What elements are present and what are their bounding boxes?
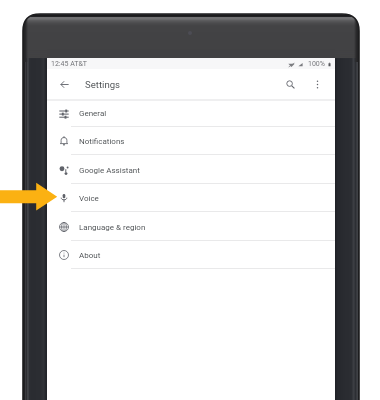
staticText: General xyxy=(79,109,107,118)
button[interactable]: Notifications xyxy=(47,127,335,155)
button[interactable]: About xyxy=(47,241,335,269)
staticText: About xyxy=(79,251,101,260)
button[interactable]: Search xyxy=(280,74,300,94)
staticText: Language & region xyxy=(79,223,146,232)
button[interactable]: Voice xyxy=(47,184,335,212)
staticText: Voice xyxy=(79,194,99,203)
staticText: 100% xyxy=(308,60,325,68)
button[interactable]: Google Assistant xyxy=(47,156,335,184)
staticText: Settings xyxy=(85,79,121,90)
button[interactable]: Language & region xyxy=(47,213,335,241)
staticText: Google Assistant xyxy=(79,166,140,175)
staticText: Notifications xyxy=(79,137,125,146)
button[interactable]: Back xyxy=(54,74,74,94)
button[interactable]: General xyxy=(47,100,335,127)
staticText: 12:45 AT&T xyxy=(51,60,88,68)
button[interactable]: More options xyxy=(307,74,327,94)
